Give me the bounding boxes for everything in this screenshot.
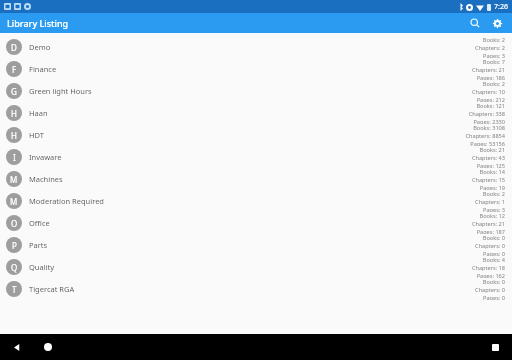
button[interactable]: Recent apps (488, 340, 502, 354)
button[interactable]: Back (10, 340, 24, 354)
staticText: O (11, 218, 18, 229)
staticText: Chapters: 18 (471, 264, 505, 272)
staticText: Chapters: 1 (475, 198, 505, 206)
staticText: Books: 21 (479, 146, 505, 154)
staticText: Books: 7 (482, 58, 505, 66)
staticText: Pages: 125 (476, 162, 505, 168)
staticText: Chapters: 2 (475, 44, 505, 52)
button[interactable]: I (0, 146, 512, 168)
staticText: M (10, 174, 18, 185)
staticText: Pages: 0 (483, 250, 505, 256)
button[interactable]: Settings (487, 13, 507, 33)
staticText: Chapters: 0 (475, 286, 505, 294)
staticText: Books: 0 (482, 278, 505, 286)
button[interactable]: O (0, 212, 512, 234)
button[interactable]: P (0, 234, 512, 256)
button[interactable]: H (0, 102, 512, 124)
button[interactable]: H (0, 124, 512, 146)
staticText: Pages: 3 (483, 206, 505, 212)
staticText: G (11, 86, 17, 97)
button[interactable]: Home (41, 340, 55, 354)
staticText: Chapters: 8854 (465, 132, 505, 140)
staticText: Chapters: 10 (471, 88, 505, 96)
button[interactable]: Search (465, 13, 485, 33)
staticText: Chapters: 338 (468, 110, 505, 118)
staticText: D (11, 42, 17, 53)
staticText: Pages: 162 (476, 272, 505, 278)
staticText: I (13, 152, 16, 163)
staticText: Chapters: 21 (471, 220, 505, 228)
staticText: Library Listing (7, 17, 69, 29)
staticText: 7:26 (494, 2, 508, 12)
button[interactable]: G (0, 80, 512, 102)
staticText: Pages: 3 (483, 52, 505, 58)
staticText: Pages: 186 (476, 74, 505, 80)
staticText: Q (11, 262, 18, 273)
button[interactable]: F (0, 58, 512, 80)
staticText: Pages: 187 (476, 228, 505, 234)
button[interactable]: M (0, 168, 512, 190)
button[interactable]: Q (0, 256, 512, 278)
staticText: Books: 2 (482, 190, 505, 198)
staticText: Moderation Required (29, 196, 475, 206)
staticText: Green light Hours (29, 86, 471, 96)
button[interactable]: T (0, 278, 512, 300)
staticText: Pages: 212 (476, 96, 505, 102)
staticText: Books: 3108 (473, 124, 505, 132)
staticText: Parts (29, 240, 475, 250)
staticText: Chapters: 43 (471, 154, 505, 162)
staticText: T (12, 284, 17, 295)
staticText: Books: 12 (479, 212, 505, 220)
staticText: Books: 4 (482, 256, 505, 264)
staticText: Pages: 53156 (470, 140, 505, 146)
staticText: P (12, 240, 17, 251)
staticText: Machines (29, 174, 471, 184)
staticText: H (11, 108, 17, 119)
staticText: Chapters: 0 (475, 242, 505, 250)
staticText: Office (29, 218, 471, 228)
staticText: HDT (29, 130, 465, 140)
staticText: F (12, 64, 17, 75)
staticText: Quality (29, 262, 471, 272)
button[interactable]: D (0, 36, 512, 58)
staticText: Pages: 2330 (473, 118, 505, 124)
staticText: H (11, 130, 17, 141)
staticText: Invaware (29, 152, 471, 162)
staticText: Tigercat RGA (29, 284, 475, 294)
staticText: Demo (29, 42, 475, 52)
staticText: Finance (29, 64, 471, 74)
staticText: Books: 0 (482, 234, 505, 242)
staticText: Pages: 19 (479, 184, 505, 190)
staticText: Chapters: 21 (471, 66, 505, 74)
staticText: M (10, 196, 18, 207)
staticText: Pages: 0 (483, 294, 505, 300)
staticText: Books: 121 (476, 102, 505, 110)
button[interactable]: M (0, 190, 512, 212)
staticText: Books: 2 (482, 36, 505, 44)
staticText: Chapters: 15 (471, 176, 505, 184)
staticText: Books: 2 (482, 80, 505, 88)
staticText: Haan (29, 108, 468, 118)
staticText: Books: 14 (479, 168, 505, 176)
